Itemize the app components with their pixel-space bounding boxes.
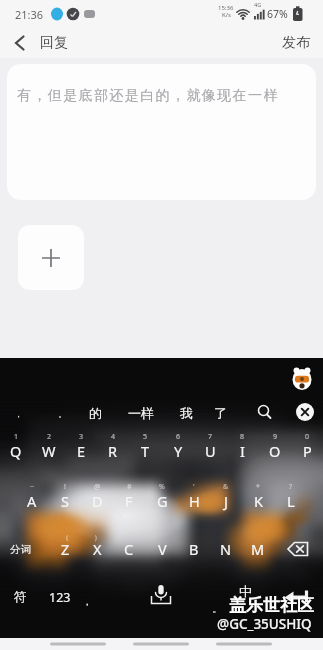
staticText: V — [158, 539, 167, 559]
button[interactable]: D — [81, 489, 113, 513]
button[interactable]: X — [81, 537, 113, 561]
staticText: W — [42, 441, 56, 461]
button[interactable] — [131, 638, 191, 650]
button[interactable]: J — [210, 489, 242, 513]
button[interactable]: 。 — [40, 402, 84, 424]
staticText: R — [108, 441, 118, 461]
button[interactable]: M — [242, 537, 274, 561]
button[interactable]: 发布 — [269, 31, 323, 55]
button[interactable] — [282, 586, 312, 608]
button[interactable] — [252, 400, 278, 424]
staticText: 67% — [267, 7, 288, 21]
staticText: 了 — [214, 405, 227, 421]
staticText: 一样 — [128, 405, 154, 421]
button[interactable]: 分词 — [3, 538, 37, 560]
button[interactable]: B — [178, 537, 210, 561]
staticText: 4G — [254, 1, 262, 8]
staticText: ! — [64, 482, 66, 492]
button[interactable]: U — [194, 439, 226, 463]
button[interactable]: W — [33, 439, 65, 463]
button[interactable]: H — [178, 489, 210, 513]
button[interactable]: 回复 — [24, 31, 84, 55]
staticText: P — [303, 441, 312, 461]
staticText: 5 — [143, 432, 148, 442]
staticText: M — [251, 539, 265, 559]
staticText: 7 — [208, 432, 213, 442]
staticText: H — [189, 491, 200, 511]
button[interactable]: ， — [0, 402, 40, 424]
button[interactable]: A — [16, 489, 48, 513]
staticText: 21:36 — [15, 7, 44, 22]
button[interactable]: R — [97, 439, 129, 463]
button[interactable] — [48, 638, 108, 650]
staticText: ） — [94, 533, 101, 542]
staticText: 9 — [273, 432, 278, 442]
button[interactable]: T — [129, 439, 161, 463]
button[interactable]: V — [146, 537, 178, 561]
staticText: K/s — [222, 11, 231, 19]
staticText: L — [287, 491, 295, 511]
button[interactable]: 123 — [42, 586, 78, 608]
button[interactable]: 一样 — [120, 402, 162, 424]
staticText: ， — [14, 408, 23, 419]
staticText: @GC_35USHIQ — [217, 615, 312, 633]
button[interactable]: Y — [162, 439, 194, 463]
staticText: 6 — [176, 432, 181, 442]
staticText: 我 — [180, 405, 193, 421]
staticText: F — [125, 491, 133, 511]
button[interactable]: N — [210, 537, 242, 561]
button[interactable]: 了 — [198, 402, 242, 424]
button[interactable] — [140, 580, 182, 608]
button[interactable]: S — [49, 489, 81, 513]
staticText: 符 — [14, 589, 27, 605]
button[interactable] — [294, 401, 316, 423]
button[interactable] — [214, 638, 274, 650]
button[interactable]: ， — [65, 590, 109, 612]
button[interactable]: O — [259, 439, 291, 463]
button[interactable] — [18, 225, 84, 290]
button[interactable]: I — [226, 439, 258, 463]
staticText: J — [224, 491, 228, 511]
staticText: E — [77, 441, 86, 461]
staticText: 有，但是底部还是白的，就像现在一样 — [17, 87, 279, 105]
button[interactable] — [8, 31, 34, 55]
button[interactable] — [284, 538, 312, 560]
staticText: ' — [193, 482, 195, 492]
staticText: 分词 — [10, 543, 31, 556]
staticText: % — [159, 482, 165, 492]
button[interactable]: 的 — [73, 402, 117, 424]
button[interactable]: 中 — [223, 580, 267, 602]
staticText: 中 — [239, 583, 252, 599]
button[interactable]: F — [113, 489, 145, 513]
staticText: C — [124, 539, 134, 559]
staticText: 0 — [305, 432, 310, 442]
staticText: ~ — [30, 482, 35, 492]
staticText: 盖乐世社区 — [229, 595, 314, 616]
button[interactable] — [290, 367, 314, 392]
button[interactable]: 符 — [0, 586, 42, 608]
staticText: Z — [61, 539, 70, 559]
button[interactable]: K — [242, 489, 274, 513]
button[interactable]: C — [113, 537, 145, 561]
staticText: 回复 — [40, 34, 68, 52]
staticText: A — [27, 491, 37, 511]
staticText: K — [254, 491, 263, 511]
button[interactable]: 我 — [164, 402, 208, 424]
staticText: @ — [94, 482, 101, 492]
staticText: I — [240, 441, 245, 461]
staticText: ， — [82, 595, 92, 608]
button[interactable]: G — [146, 489, 178, 513]
staticText: 8 — [240, 432, 245, 442]
button[interactable]: P — [291, 439, 323, 463]
button[interactable]: 。 — [195, 597, 239, 619]
staticText: 4 — [111, 432, 116, 442]
staticText: 。 — [212, 602, 222, 615]
staticText: O — [269, 441, 281, 461]
button[interactable]: E — [65, 439, 97, 463]
staticText: # — [127, 482, 132, 492]
button[interactable]: Z — [49, 537, 81, 561]
button[interactable]: L — [275, 489, 307, 513]
button[interactable]: Q — [0, 439, 32, 463]
button[interactable]: 有，但是底部还是白的，就像现在一样 — [7, 64, 316, 200]
staticText: 。 — [58, 408, 67, 419]
